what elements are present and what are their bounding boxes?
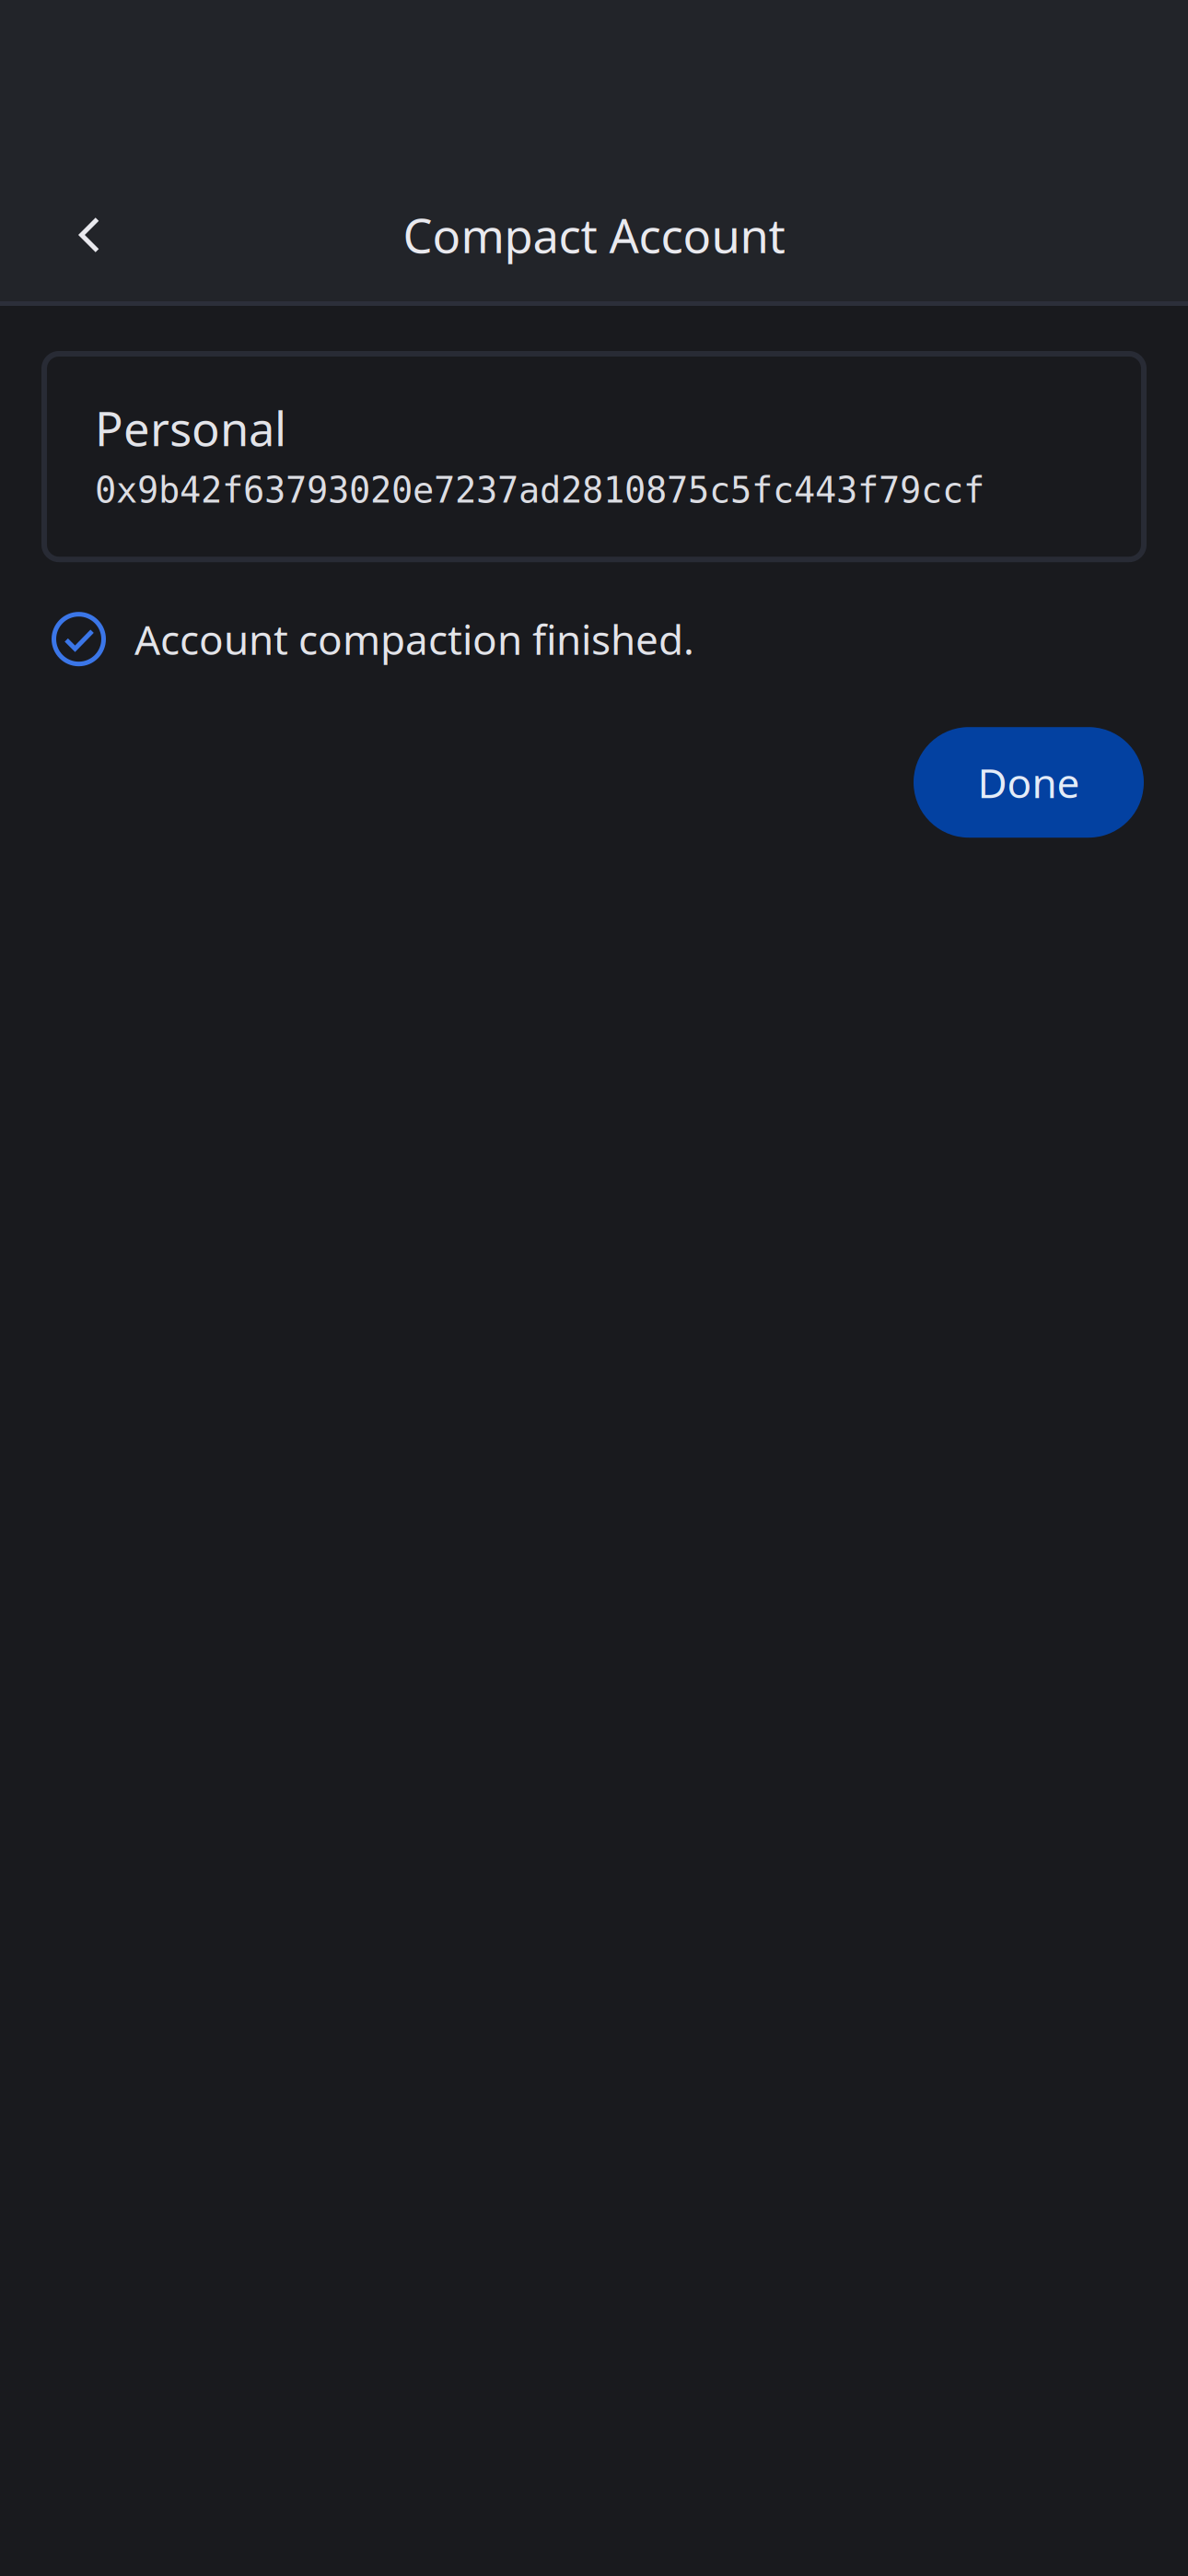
staticText: Account compaction finished. [134, 612, 694, 666]
staticText: Compact Account [403, 204, 785, 266]
staticText: Done [978, 755, 1080, 809]
staticText: Personal [95, 397, 286, 459]
button[interactable]: Done [914, 727, 1144, 838]
button[interactable]: Back [39, 184, 140, 286]
staticText: 0x9b42f63793020e7237ad2810875c5fc443f79c… [95, 470, 984, 511]
